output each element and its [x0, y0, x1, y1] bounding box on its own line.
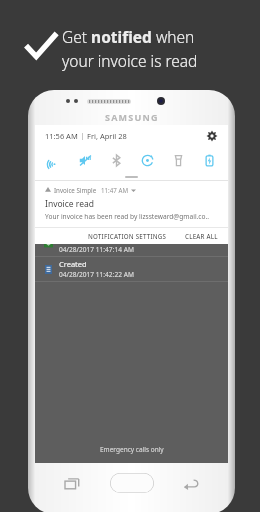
staticText: your invoice is read [62, 50, 198, 71]
button[interactable]: Wi-Fi [41, 147, 67, 173]
staticText: Invoice Simple [54, 186, 97, 194]
staticText: Your invoice has been read by lizsstewar… [45, 212, 210, 221]
staticText: Read by lizssteward@gmail.com [59, 234, 172, 244]
button[interactable]: Invoice Simple [35, 181, 228, 227]
button[interactable]: NOTIFICATION SETTINGS [82, 230, 173, 242]
button[interactable]: CLEAR ALL [179, 230, 224, 242]
staticText: SAMSUNG [105, 111, 159, 123]
staticText: 04/28/2017 11:47:14 AM [59, 245, 134, 254]
staticText: CLEAR ALL [185, 232, 218, 240]
button[interactable]: Back [183, 476, 199, 492]
button[interactable]: Power saving [196, 147, 222, 173]
button[interactable]: Sound [72, 147, 98, 173]
button[interactable]: Recent apps [64, 476, 80, 492]
button[interactable]: Settings [206, 130, 218, 142]
staticText: Invoice read [45, 198, 95, 210]
button[interactable]: Auto rotate [134, 147, 160, 173]
button[interactable]: Read by lizssteward@gmail.com [35, 232, 228, 256]
staticText: NOTIFICATION SETTINGS [88, 232, 167, 240]
staticText: 11:47 AM [101, 186, 128, 194]
button[interactable]: Bluetooth [103, 147, 129, 173]
button[interactable]: Flashlight [165, 147, 191, 173]
button[interactable]: Created [35, 257, 228, 281]
button[interactable]: Home [110, 473, 154, 493]
staticText: 11:56 AM [45, 131, 78, 141]
staticText: 04/28/2017 11:42:22 AM [59, 270, 134, 279]
staticText: Fri, April 28 [87, 131, 127, 141]
staticText: Emergency calls only [100, 445, 164, 454]
staticText: Created [59, 259, 87, 269]
staticText: Get notified when [62, 26, 195, 47]
